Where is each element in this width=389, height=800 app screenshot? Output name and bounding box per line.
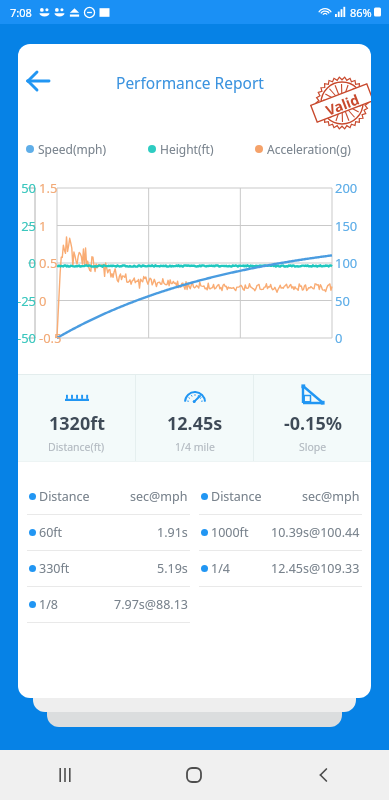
button[interactable]: Distance	[199, 479, 362, 515]
staticText: 1/4 mile	[175, 440, 215, 454]
staticText: -0.5	[39, 329, 62, 347]
staticText: Distance	[39, 488, 90, 505]
staticText: 1	[39, 217, 47, 235]
staticText: Performance Report	[116, 72, 264, 93]
staticText: 50	[335, 292, 350, 310]
button[interactable]: Back	[259, 750, 389, 800]
staticText: 330ft	[39, 560, 70, 577]
staticText: sec@mph	[302, 488, 360, 505]
button[interactable]: Recent apps	[0, 750, 129, 800]
staticText: sec@mph	[130, 488, 188, 505]
staticText: Distance(ft)	[48, 440, 105, 454]
button[interactable]: 1320ft	[18, 374, 135, 462]
button[interactable]: 60ft	[27, 515, 190, 551]
staticText: 86%	[350, 5, 372, 20]
staticText: 200	[335, 179, 358, 197]
staticText: 50	[18, 179, 36, 197]
staticText: Slope	[299, 440, 327, 454]
staticText: 12.45s	[167, 411, 223, 436]
staticText: 1000ft	[211, 524, 249, 541]
staticText: 25	[18, 217, 36, 235]
staticText: Speed(mph)	[38, 141, 107, 157]
staticText: 0	[18, 254, 36, 272]
staticText: 10.39s@100.44	[271, 524, 360, 541]
staticText: 12.45s@109.33	[271, 560, 360, 577]
staticText: 100	[335, 254, 358, 272]
button[interactable]: Distance	[27, 479, 190, 515]
button[interactable]: 1/4	[199, 551, 362, 587]
staticText: 5.19s	[157, 560, 188, 577]
button[interactable]: -0.15%	[254, 374, 371, 462]
staticText: 0	[39, 292, 47, 310]
staticText: Height(ft)	[160, 141, 214, 157]
staticText: 0	[335, 329, 343, 347]
staticText: 150	[335, 217, 358, 235]
staticText: 1/4	[211, 560, 230, 577]
staticText: -25	[18, 292, 36, 310]
staticText: 1.5	[39, 179, 58, 197]
staticText: Distance	[211, 488, 262, 505]
button[interactable]: Home	[129, 750, 259, 800]
staticText: -50	[18, 329, 36, 347]
staticText: 7.97s@88.13	[114, 596, 188, 613]
staticText: 1.91s	[157, 524, 188, 541]
staticText: 0.5	[39, 254, 58, 272]
staticText: 1/8	[39, 596, 58, 613]
staticText: Acceleration(g)	[267, 141, 351, 157]
staticText: -0.15%	[284, 411, 342, 436]
staticText: 7:08	[10, 5, 32, 20]
button[interactable]: 12.45s	[136, 374, 253, 462]
staticText: 1320ft	[49, 411, 105, 436]
button[interactable]: 330ft	[27, 551, 190, 587]
button[interactable]: 1/8	[27, 587, 190, 623]
staticText: 60ft	[39, 524, 63, 541]
staticText: Valid	[323, 89, 362, 120]
button[interactable]: 1000ft	[199, 515, 362, 551]
button[interactable]: Back	[18, 59, 60, 103]
